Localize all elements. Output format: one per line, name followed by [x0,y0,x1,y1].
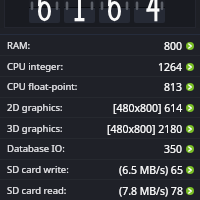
button[interactable]: SD card write: [0,159,200,180]
other: Details [186,125,194,133]
button[interactable]: 2D graphics: [0,97,200,118]
staticText: 3D graphics: [7,122,63,135]
staticText: Database IO: [7,142,65,155]
staticText: (6.5 MB/s) 65 [119,163,183,177]
staticText: SD card write: [7,163,69,176]
other: Details [186,187,194,195]
staticText: CPU float-point: [7,80,78,93]
staticText: (7.8 MB/s) 78 [119,184,183,198]
other: Details [186,145,194,153]
button[interactable]: SD card read: [0,180,200,200]
other: Details [186,166,194,174]
staticText: RAM: [7,39,31,52]
button[interactable]: RAM: [0,35,200,56]
other: Details [186,42,194,50]
other: Details [186,63,194,71]
other: Details [186,83,194,91]
staticText: 350 [164,142,183,156]
button[interactable]: CPU float-point: [0,76,200,97]
staticText: CPU integer: [7,60,63,73]
staticText: [480x800] 2180 [107,122,183,136]
staticText: 2D graphics: [7,101,63,114]
button[interactable]: CPU integer: [0,56,200,77]
staticText: [480x800] 614 [113,101,183,115]
button[interactable]: Database IO: [0,138,200,159]
button[interactable]: 3D graphics: [0,118,200,139]
staticText: 1264 [158,60,183,74]
staticText: SD card read: [7,184,67,197]
staticText: 800 [164,39,183,53]
staticText: 813 [164,80,183,94]
other: Details [186,104,194,112]
